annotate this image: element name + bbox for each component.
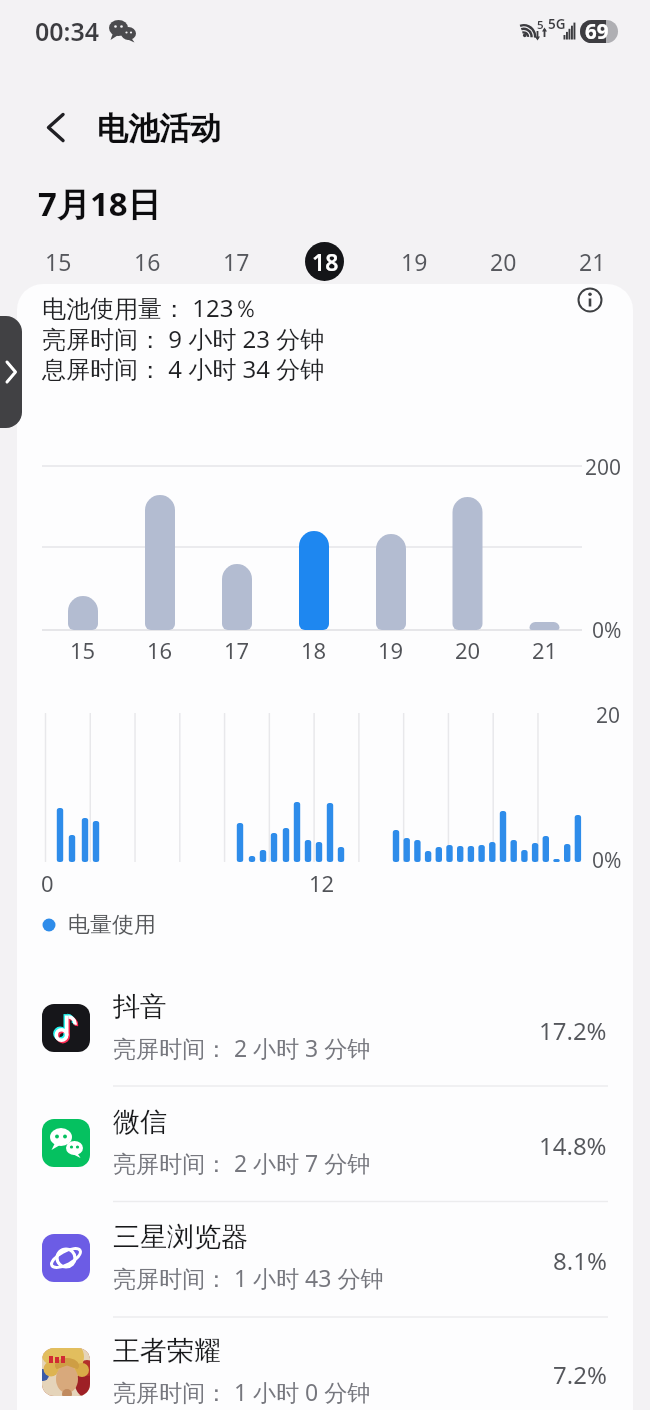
- staticText: 三星浏览器: [113, 1220, 248, 1254]
- staticText: 5: [537, 17, 544, 33]
- staticText: 8.1%: [553, 1244, 607, 1277]
- staticText: 18: [301, 635, 327, 665]
- staticText: 20: [455, 635, 481, 665]
- staticText: 微信: [113, 1105, 167, 1139]
- button[interactable]: [0, 316, 22, 428]
- staticText: 7月18日: [38, 181, 161, 226]
- staticText: 200: [585, 453, 622, 482]
- button[interactable]: [36, 239, 80, 283]
- button[interactable]: [570, 239, 614, 283]
- staticText: 5G: [548, 15, 566, 33]
- button[interactable]: [35, 105, 80, 150]
- button[interactable]: [125, 239, 169, 283]
- staticText: 亮屏时间： 2 小时 7 分钟: [113, 1147, 371, 1178]
- staticText: 息屏时间： 4 小时 34 分钟: [42, 352, 325, 385]
- staticText: 17.2%: [539, 1014, 607, 1047]
- staticText: 16: [134, 246, 161, 277]
- staticText: 王者荣耀: [113, 1334, 221, 1368]
- staticText: 21: [579, 246, 606, 277]
- staticText: 0%: [592, 846, 622, 875]
- button[interactable]: [17, 1086, 633, 1201]
- staticText: 0%: [592, 616, 622, 645]
- staticText: 21: [532, 635, 558, 665]
- button[interactable]: [392, 239, 436, 283]
- staticText: 00:34: [35, 14, 100, 48]
- staticText: 抖音: [113, 990, 167, 1024]
- button[interactable]: [214, 239, 258, 283]
- staticText: 亮屏时间： 1 小时 0 分钟: [113, 1376, 371, 1407]
- staticText: 69: [585, 17, 609, 45]
- button[interactable]: [17, 971, 633, 1086]
- staticText: 16: [147, 635, 173, 665]
- staticText: 电池活动: [97, 109, 221, 148]
- staticText: 15: [70, 635, 96, 665]
- staticText: 亮屏时间： 1 小时 43 分钟: [113, 1262, 384, 1293]
- staticText: 20: [490, 246, 517, 277]
- staticText: 14.8%: [539, 1129, 607, 1162]
- staticText: 18: [312, 246, 339, 277]
- staticText: 0: [41, 868, 54, 898]
- staticText: 7.2%: [553, 1358, 607, 1391]
- staticText: 20: [596, 701, 621, 730]
- button[interactable]: [570, 280, 610, 320]
- staticText: 12: [309, 868, 335, 898]
- button[interactable]: [17, 1200, 633, 1315]
- staticText: 19: [401, 246, 428, 277]
- button[interactable]: [303, 239, 347, 283]
- staticText: 电池使用量： 123％: [42, 291, 258, 324]
- staticText: 亮屏时间： 9 小时 23 分钟: [42, 322, 325, 355]
- staticText: 17: [224, 635, 250, 665]
- staticText: 15: [45, 246, 72, 277]
- button[interactable]: [17, 1315, 633, 1410]
- staticText: 17: [223, 246, 250, 277]
- staticText: 电量使用: [68, 911, 156, 939]
- staticText: 亮屏时间： 2 小时 3 分钟: [113, 1032, 371, 1063]
- button[interactable]: [481, 239, 525, 283]
- staticText: 19: [378, 635, 404, 665]
